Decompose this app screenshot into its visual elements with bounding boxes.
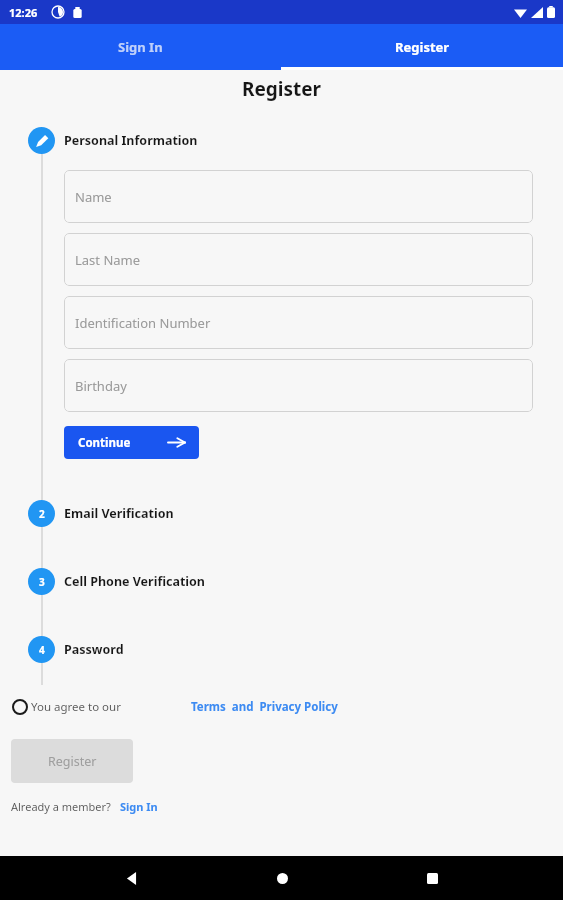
staticText: 12:26 — [9, 5, 38, 20]
button[interactable]: Back — [111, 858, 151, 898]
button[interactable]: 2 — [28, 500, 563, 527]
button[interactable]: 4 — [28, 636, 563, 663]
staticText: Name — [75, 188, 112, 206]
button[interactable]: Terms and Privacy Policy — [191, 699, 338, 715]
other: Edit personal information — [28, 127, 55, 154]
staticText: 3 — [39, 575, 45, 589]
staticText: Register — [0, 76, 563, 102]
button[interactable]: Identification Number — [64, 296, 533, 349]
staticText: Sign In — [118, 38, 163, 56]
button[interactable]: Register — [281, 24, 563, 70]
staticText: 4 — [39, 643, 45, 657]
staticText: Personal Information — [64, 132, 198, 149]
button[interactable]: Last Name — [64, 233, 533, 286]
staticText: Continue — [78, 435, 131, 451]
staticText: Register — [395, 38, 450, 56]
button[interactable]: Name — [64, 170, 533, 223]
button[interactable]: Continue — [64, 426, 199, 459]
staticText: Last Name — [75, 251, 141, 269]
button[interactable]: Sign In — [120, 799, 158, 814]
staticText: Email Verification — [64, 505, 174, 522]
button[interactable]: Register — [11, 739, 133, 783]
staticText: You agree to our — [31, 699, 121, 715]
button[interactable]: Edit personal information — [28, 127, 563, 154]
staticText: Already a member? — [11, 799, 111, 814]
button[interactable]: Agree to terms — [9, 696, 31, 718]
staticText: Cell Phone Verification — [64, 573, 205, 590]
staticText: Password — [64, 641, 124, 658]
button[interactable]: 3 — [28, 568, 563, 595]
staticText: Register — [48, 753, 97, 770]
button[interactable]: Birthday — [64, 359, 533, 412]
staticText: 2 — [39, 507, 45, 521]
button[interactable]: Recent apps — [412, 858, 452, 898]
staticText: Identification Number — [75, 314, 211, 332]
button[interactable]: Sign In — [0, 24, 281, 70]
button[interactable]: Home — [262, 858, 302, 898]
staticText: Birthday — [75, 377, 127, 395]
